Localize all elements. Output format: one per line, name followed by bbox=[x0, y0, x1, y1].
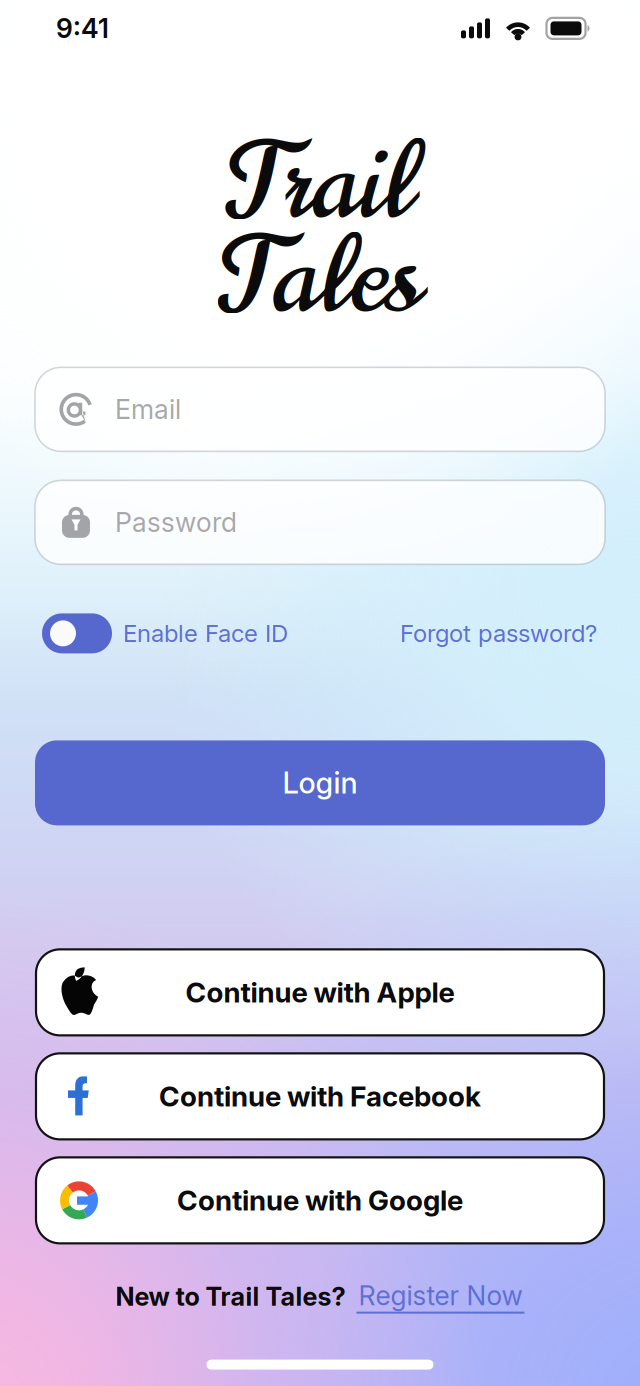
staticText: 9:41 bbox=[56, 12, 109, 44]
staticText: Trail bbox=[226, 110, 414, 257]
button[interactable]: Password bbox=[35, 480, 605, 564]
button[interactable]: Forgot password? bbox=[400, 619, 597, 648]
button[interactable]: Continue with Google bbox=[36, 1157, 604, 1243]
staticText: Tales bbox=[218, 204, 421, 351]
button[interactable]: Register Now bbox=[356, 1279, 524, 1314]
staticText: Email bbox=[115, 393, 181, 425]
staticText: Login bbox=[282, 765, 357, 801]
staticText: Continue with Apple bbox=[185, 975, 454, 1009]
button[interactable]: Login bbox=[35, 740, 605, 825]
staticText: Password bbox=[115, 506, 237, 538]
staticText: Enable Face ID bbox=[123, 619, 288, 648]
staticText: Forgot password? bbox=[400, 619, 597, 648]
staticText: Register Now bbox=[358, 1279, 522, 1312]
staticText: Continue with Facebook bbox=[159, 1079, 481, 1113]
staticText: New to Trail Tales? bbox=[115, 1281, 345, 1312]
button[interactable]: Enable Face ID bbox=[42, 613, 288, 653]
button[interactable]: Continue with Apple bbox=[36, 949, 604, 1035]
staticText: Continue with Google bbox=[177, 1183, 463, 1217]
button[interactable]: Email bbox=[35, 367, 605, 451]
button[interactable]: Continue with Facebook bbox=[36, 1053, 604, 1139]
